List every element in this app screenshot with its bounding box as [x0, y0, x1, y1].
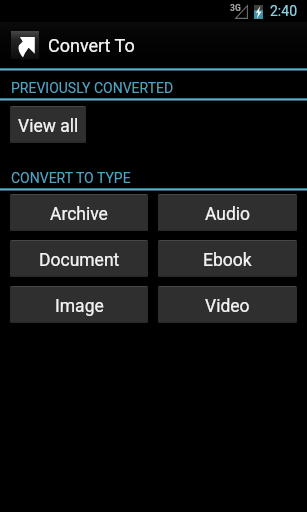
staticText: PREVIOUSLY CONVERTED — [11, 80, 174, 96]
staticText: Image — [55, 296, 104, 317]
button[interactable]: Video — [158, 286, 297, 323]
button[interactable]: Image — [10, 286, 148, 323]
staticText: Document — [39, 250, 120, 271]
button[interactable]: Document — [10, 240, 148, 277]
staticText: CONVERT TO TYPE — [11, 170, 131, 186]
button[interactable]: Ebook — [158, 240, 297, 277]
button[interactable]: Archive — [10, 194, 148, 231]
staticText: Audio — [205, 204, 251, 225]
button[interactable]: View all — [10, 106, 86, 143]
staticText: Video — [205, 296, 250, 317]
button[interactable]: Audio — [158, 194, 297, 231]
staticText: 3G — [230, 3, 241, 13]
staticText: Ebook — [203, 250, 252, 271]
staticText: View all — [18, 116, 79, 137]
staticText: 2:40 — [270, 3, 297, 19]
staticText: Archive — [50, 204, 108, 225]
staticText: Convert To — [48, 35, 135, 56]
